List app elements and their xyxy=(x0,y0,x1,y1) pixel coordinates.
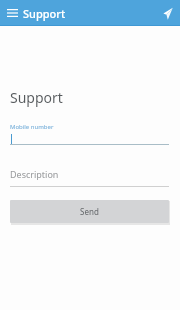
staticText: Description xyxy=(10,168,59,180)
staticText: Send xyxy=(80,206,99,217)
button[interactable]: Send xyxy=(10,200,169,223)
staticText: Mobile number xyxy=(10,123,54,131)
button[interactable]: Description xyxy=(10,168,169,187)
staticText: Support xyxy=(10,88,63,107)
button[interactable]: Open navigation menu xyxy=(2,3,22,23)
staticText: Support xyxy=(23,6,66,21)
button[interactable]: Mobile number xyxy=(10,123,169,145)
button[interactable]: Send xyxy=(156,3,176,23)
